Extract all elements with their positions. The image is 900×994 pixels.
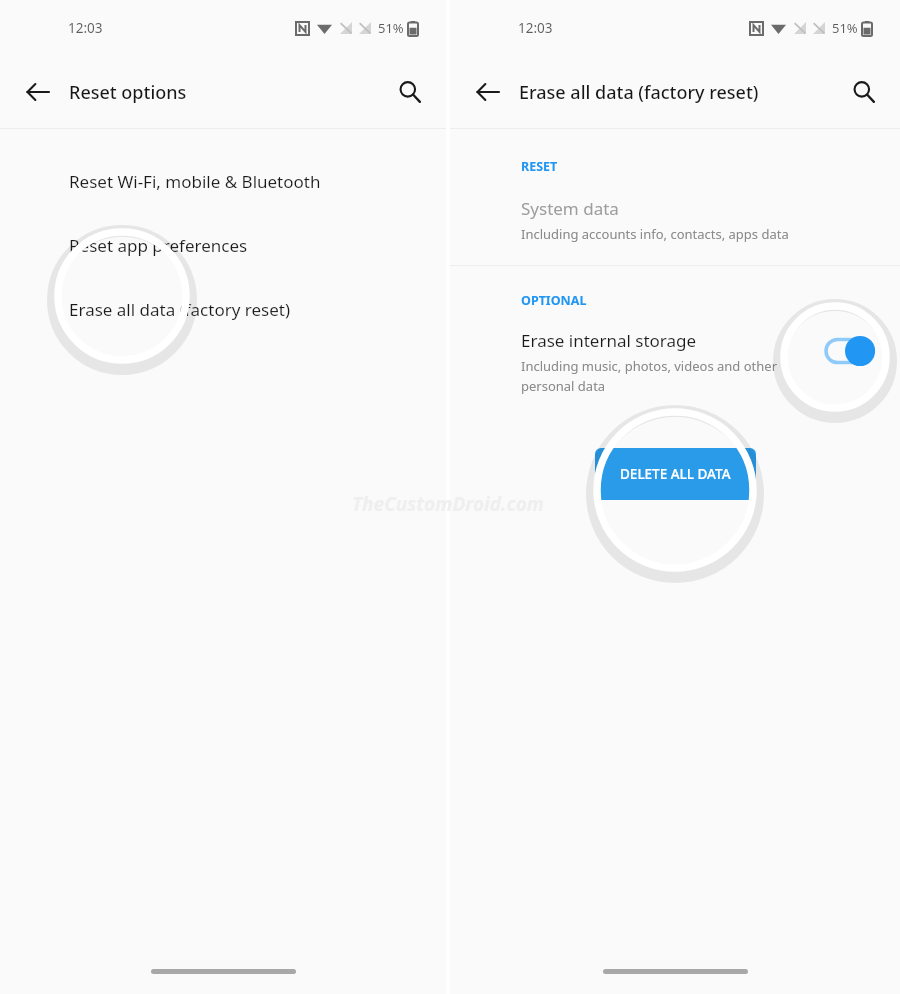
staticText: 51% <box>378 19 404 37</box>
staticText: Erase all data (factory reset) <box>519 80 759 105</box>
staticText: Including music, photos, videos and othe… <box>521 357 777 375</box>
staticText: OPTIONAL <box>521 292 587 309</box>
button[interactable]: Erase all data (factory reset) <box>0 277 446 341</box>
button[interactable]: DELETE ALL DATA <box>595 448 756 500</box>
staticText: 51% <box>832 19 858 37</box>
staticText: TheCustomDroid.com <box>352 491 544 517</box>
button[interactable]: Erase internal storage <box>450 329 900 395</box>
staticText: Erase internal storage <box>521 329 697 352</box>
staticText: Including accounts info, contacts, apps … <box>521 225 789 243</box>
staticText: RESET <box>521 158 558 175</box>
staticText: 12:03 <box>518 19 553 37</box>
staticText: Reset app preferences <box>69 234 248 257</box>
staticText: DELETE ALL DATA <box>620 465 731 483</box>
staticText: System data <box>521 197 619 220</box>
button[interactable]: Reset Wi-Fi, mobile & Bluetooth <box>0 149 446 213</box>
staticText: Erase all data (factory reset) <box>69 298 291 321</box>
staticText: Reset Wi-Fi, mobile & Bluetooth <box>69 170 321 193</box>
button[interactable]: Back <box>14 68 62 116</box>
staticText: Reset options <box>69 80 187 105</box>
button[interactable]: Search <box>386 68 434 116</box>
button[interactable]: Erase internal storage toggle <box>826 335 878 367</box>
button[interactable]: Search <box>840 68 888 116</box>
staticText: 12:03 <box>68 19 103 37</box>
staticText: personal data <box>521 377 606 395</box>
button[interactable]: Reset app preferences <box>0 213 446 277</box>
button[interactable]: Back <box>464 68 512 116</box>
